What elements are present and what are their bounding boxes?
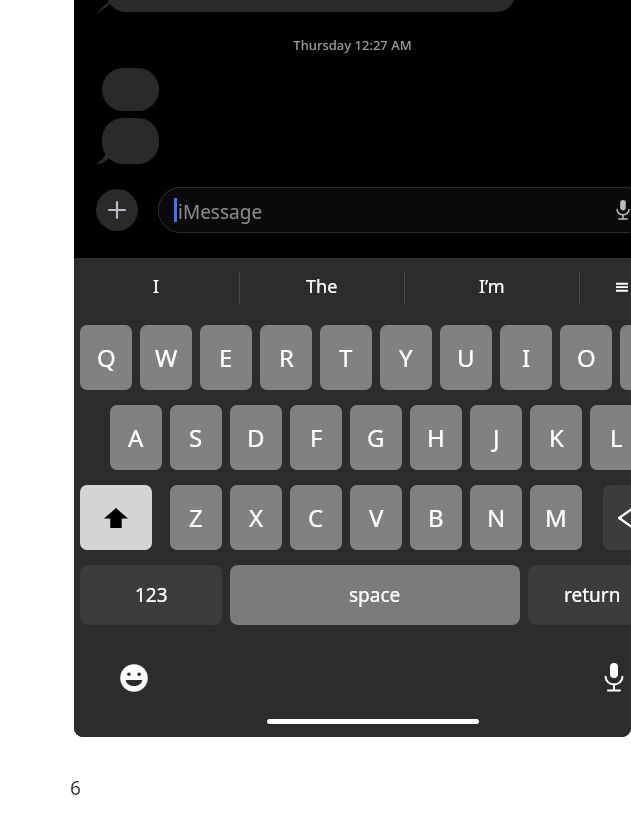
button[interactable]: N [470, 485, 522, 550]
button[interactable]: P [620, 325, 631, 390]
staticText: M [545, 501, 567, 534]
staticText: W [155, 341, 178, 374]
button[interactable]: M [530, 485, 582, 550]
button[interactable]: A [110, 405, 162, 470]
button[interactable]: space [230, 565, 520, 625]
button[interactable]: Q [80, 325, 132, 390]
button[interactable]: return [528, 565, 631, 625]
staticText: return [564, 582, 621, 608]
staticText: ≡ [614, 275, 630, 297]
staticText: R [279, 341, 294, 374]
staticText: Thursday 12:27 AM [74, 36, 631, 54]
button[interactable]: I [500, 325, 552, 390]
staticText: 6 [70, 775, 81, 801]
staticText: B [428, 501, 444, 534]
staticText: iMessage [178, 199, 263, 225]
button[interactable]: C [290, 485, 342, 550]
button[interactable]: Add attachment [96, 189, 138, 231]
staticText: I [522, 341, 531, 374]
staticText: G [367, 421, 385, 454]
button[interactable]: I [74, 258, 239, 314]
button[interactable]: K [530, 405, 582, 470]
staticText: F [310, 421, 323, 454]
button[interactable]: R [260, 325, 312, 390]
button[interactable]: Shift [80, 485, 152, 550]
button[interactable]: 123 [80, 565, 222, 625]
button[interactable]: iMessage [158, 187, 631, 233]
staticText: O [577, 341, 596, 374]
button[interactable]: T [320, 325, 372, 390]
button[interactable]: I’m [405, 258, 579, 314]
button[interactable]: G [350, 405, 402, 470]
button[interactable]: Emoji [118, 662, 150, 694]
button[interactable]: J [470, 405, 522, 470]
button[interactable]: H [410, 405, 462, 470]
staticText: U [457, 341, 475, 374]
button[interactable]: B [410, 485, 462, 550]
staticText: A [128, 421, 144, 454]
button[interactable]: W [140, 325, 192, 390]
staticText: C [308, 501, 324, 534]
staticText: L [610, 421, 623, 454]
staticText: E [219, 341, 233, 374]
button[interactable]: F [290, 405, 342, 470]
button[interactable]: O [560, 325, 612, 390]
staticText: D [247, 421, 265, 454]
staticText: K [549, 421, 564, 454]
staticText: T [339, 341, 353, 374]
button[interactable]: ≡ [580, 258, 631, 314]
button[interactable]: L [590, 405, 631, 470]
button[interactable]: S [170, 405, 222, 470]
staticText: 123 [135, 582, 168, 608]
button[interactable]: Z [170, 485, 222, 550]
staticText: Z [189, 501, 203, 534]
staticText: J [493, 421, 500, 454]
staticText: I [153, 274, 160, 299]
staticText: I’m [479, 274, 505, 299]
staticText: Y [399, 341, 413, 374]
staticText: H [427, 421, 445, 454]
button[interactable]: Y [380, 325, 432, 390]
button[interactable]: V [350, 485, 402, 550]
button[interactable]: E [200, 325, 252, 390]
staticText: S [189, 421, 203, 454]
staticText: V [369, 501, 384, 534]
staticText: Q [97, 341, 116, 374]
button[interactable]: D [230, 405, 282, 470]
button[interactable]: Dictation [597, 660, 631, 694]
button[interactable]: Backspace [603, 485, 631, 550]
button[interactable]: X [230, 485, 282, 550]
staticText: space [349, 582, 401, 608]
staticText: The [306, 274, 338, 299]
staticText: X [249, 501, 264, 534]
staticText: N [487, 501, 506, 534]
button[interactable]: The [240, 258, 404, 314]
button[interactable]: U [440, 325, 492, 390]
button[interactable]: Dictate [608, 195, 631, 225]
